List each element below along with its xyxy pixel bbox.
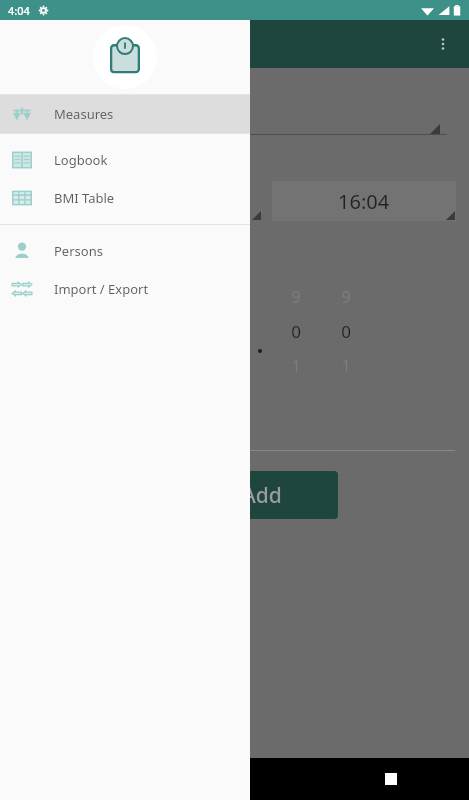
button[interactable]: Persons	[0, 232, 250, 270]
button[interactable]: Measures	[0, 95, 250, 133]
staticText: Import / Export	[54, 280, 149, 298]
staticText: 0	[326, 320, 366, 343]
button[interactable]: BMI Table	[0, 179, 250, 217]
button[interactable]: More options	[427, 28, 459, 60]
button[interactable]: 16:04	[272, 181, 456, 221]
staticText: BMI Table	[54, 189, 115, 207]
staticText: 9	[276, 286, 316, 308]
button[interactable]: Logbook	[0, 141, 250, 179]
button[interactable]: Add	[186, 471, 338, 519]
staticText: 4:04	[8, 3, 30, 18]
staticText: Measures	[54, 105, 114, 123]
button[interactable]: Home	[215, 759, 255, 799]
staticText: Logbook	[54, 151, 108, 169]
staticText: 9	[326, 286, 366, 308]
staticText: Add	[242, 481, 282, 510]
button[interactable]: Recent apps	[371, 759, 411, 799]
staticText: 0	[276, 320, 316, 343]
staticText: Persons	[54, 242, 103, 260]
staticText: 16:04	[338, 188, 390, 215]
button[interactable]: Import / Export	[0, 270, 250, 308]
